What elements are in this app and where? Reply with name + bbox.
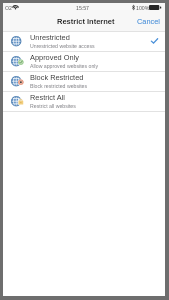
button[interactable]: Approved Only — [3, 52, 165, 71]
staticText: O2 — [5, 5, 12, 11]
staticText: Approved Only — [30, 53, 79, 61]
staticText: Block Restricted — [30, 73, 84, 81]
button[interactable]: Restrict All — [3, 92, 165, 111]
staticText: 100% — [136, 5, 150, 11]
staticText: Restrict all websites — [30, 103, 76, 109]
button[interactable]: Unrestricted — [3, 32, 165, 51]
staticText: Restrict All — [30, 93, 65, 101]
staticText: Block restricted websites — [30, 83, 88, 89]
staticText: Allow approved websites only — [30, 63, 99, 69]
staticText: Cancel — [137, 17, 161, 25]
button[interactable]: Block Restricted — [3, 72, 165, 91]
staticText: Unrestricted website access — [30, 43, 95, 49]
staticText: Restrict Internet — [57, 17, 115, 25]
staticText: 15:57 — [76, 5, 89, 11]
button[interactable]: Cancel — [132, 13, 169, 31]
staticText: Unrestricted — [30, 33, 70, 41]
